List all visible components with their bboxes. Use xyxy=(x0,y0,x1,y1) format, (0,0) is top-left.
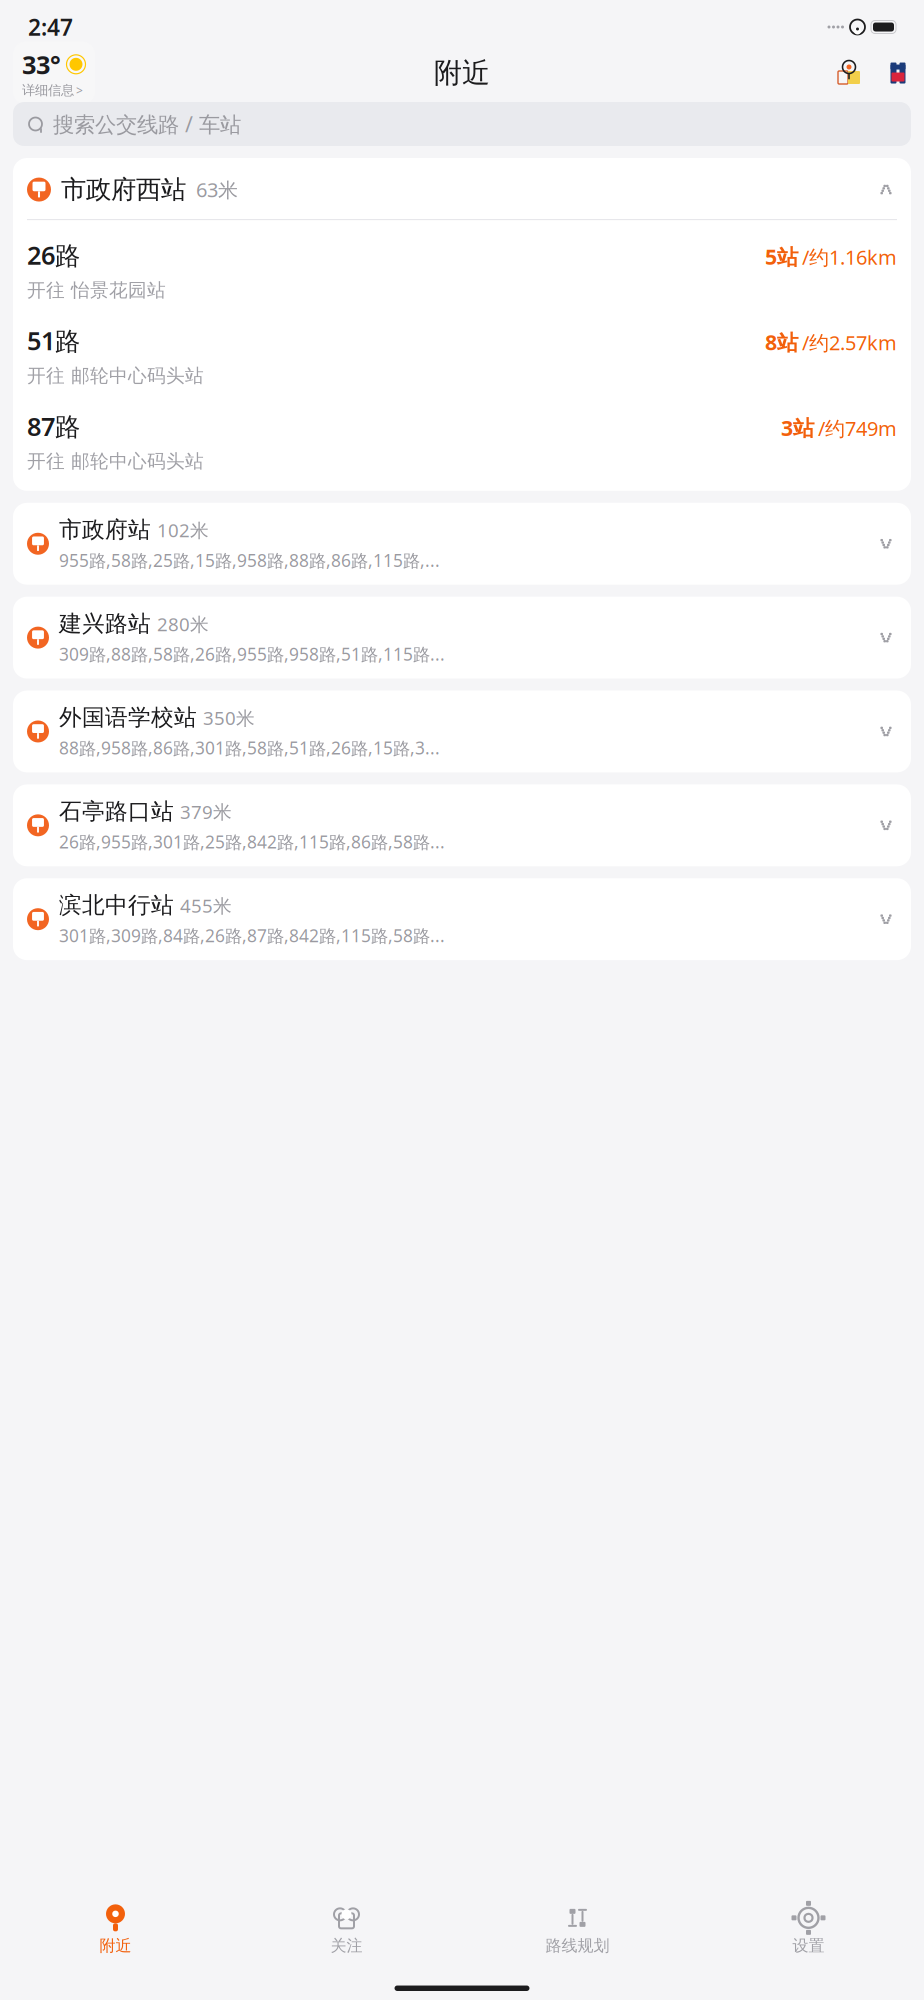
staticText: 350米 xyxy=(203,705,255,730)
staticText: 石亭路口站 xyxy=(59,797,174,825)
staticText: 88路,958路,86路,301路,58路,51路,26路,15路,3... xyxy=(59,736,440,759)
staticText: 2:47 xyxy=(28,12,73,42)
staticText: 附近 xyxy=(99,1936,131,1955)
button[interactable]: 石亭路口站 xyxy=(13,784,911,866)
staticText: > xyxy=(76,82,83,98)
button[interactable]: 地图 xyxy=(835,59,863,87)
staticText: 开往 邮轮中心码头站 xyxy=(27,364,204,387)
button[interactable]: 87路 xyxy=(27,409,897,473)
button[interactable]: 51路 xyxy=(27,324,897,387)
staticText: 87路 xyxy=(27,409,80,443)
staticText: 63米 xyxy=(196,176,238,203)
staticText: 市政府西站 xyxy=(61,174,186,205)
staticText: 建兴路站 xyxy=(59,610,151,637)
staticText: 3站 xyxy=(781,413,814,442)
button[interactable]: 建兴路站 xyxy=(13,597,911,679)
staticText: 详细信息 xyxy=(22,82,74,98)
staticText: 309路,88路,58路,26路,955路,958路,51路,115路... xyxy=(59,642,445,665)
staticText: 102米 xyxy=(157,518,209,542)
staticText: 附近 xyxy=(434,56,490,90)
staticText: /约1.16km xyxy=(802,244,897,270)
staticText: 外国语学校站 xyxy=(59,703,197,731)
staticText: 26路,955路,301路,25路,842路,115路,86路,58路... xyxy=(59,830,445,853)
staticText: 关注 xyxy=(330,1936,362,1955)
staticText: /约2.57km xyxy=(802,329,897,356)
staticText: 955路,58路,25路,15路,958路,88路,86路,115路,... xyxy=(59,549,440,572)
staticText: 51路 xyxy=(27,324,80,357)
staticText: 市政府站 xyxy=(59,516,151,544)
button[interactable]: 搜索公交线路 / 车站 xyxy=(13,102,911,146)
button[interactable]: 附近 xyxy=(0,1901,231,1959)
button[interactable]: 外国语学校站 xyxy=(13,690,911,772)
button[interactable]: 市政府站 xyxy=(13,503,911,585)
staticText: /约749m xyxy=(818,415,897,441)
staticText: 路线规划 xyxy=(545,1936,609,1955)
staticText: 455米 xyxy=(180,893,232,918)
staticText: 开往 怡景花园站 xyxy=(27,279,166,302)
staticText: 379米 xyxy=(180,799,232,824)
staticText: 开往 邮轮中心码头站 xyxy=(27,450,204,473)
button[interactable]: 滨北中行站 xyxy=(13,878,911,960)
button[interactable]: 路线规划 xyxy=(462,1901,693,1959)
staticText: 搜索公交线路 / 车站 xyxy=(53,110,241,138)
button[interactable]: 天气 33度 详细信息 xyxy=(13,41,95,104)
staticText: 5站 xyxy=(765,242,798,271)
staticText: 8站 xyxy=(765,328,798,356)
staticText: 设置 xyxy=(792,1936,824,1955)
staticText: 滨北中行站 xyxy=(59,891,174,919)
staticText: 280米 xyxy=(157,611,209,636)
button[interactable]: 地铁 xyxy=(885,61,911,85)
staticText: 301路,309路,84路,26路,87路,842路,115路,58路... xyxy=(59,924,445,947)
button[interactable]: 关注 xyxy=(231,1901,462,1959)
button[interactable]: 设置 xyxy=(693,1901,924,1959)
staticText: 26路 xyxy=(27,238,80,272)
button[interactable]: 26路 xyxy=(27,238,897,302)
button[interactable]: 市政府西站 xyxy=(13,158,911,219)
staticText: 33° xyxy=(22,47,61,81)
